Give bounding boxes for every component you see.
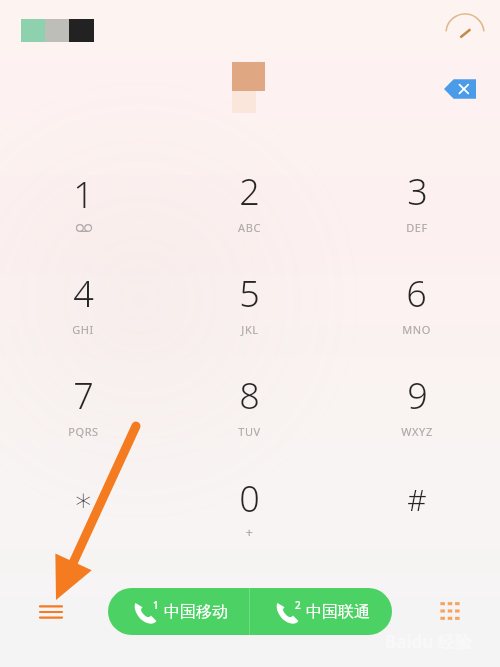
staticText: DEF [406,220,428,235]
staticText: + [245,523,254,541]
button[interactable]: 8 [166,354,333,456]
button[interactable]: 0 [166,456,333,558]
staticText: 1 [73,170,94,219]
staticText: GHI [72,322,94,337]
button[interactable]: 9 [333,354,500,456]
staticText: 2 [295,598,301,612]
staticText: JKL [241,322,259,337]
button[interactable]: Backspace [444,78,476,100]
staticText: 7 [73,371,94,420]
button[interactable]: 2 [166,150,333,252]
button[interactable]: Contacts [434,596,466,626]
button[interactable]: 1 [0,150,166,252]
staticText: 0 [239,474,260,523]
button[interactable]: ∗ [0,456,166,558]
staticText: 中国联通 [306,602,370,622]
staticText: 8 [239,371,260,420]
button[interactable]: Call log [36,598,66,626]
button[interactable]: 2 [250,588,392,635]
button[interactable]: # [333,456,500,558]
staticText: WXYZ [401,424,433,439]
staticText: # [407,479,427,520]
staticText: 中国移动 [164,602,228,622]
button[interactable]: 1 [108,588,249,635]
staticText: PQRS [68,424,99,439]
staticText: 1 [153,598,159,612]
button[interactable]: 6 [333,252,500,354]
staticText: ∗ [73,481,94,518]
button[interactable]: 5 [166,252,333,354]
staticText: MNO [402,322,431,337]
staticText: 9 [407,371,428,420]
other: Timer [446,14,484,52]
button[interactable]: 7 [0,354,166,456]
button[interactable]: 4 [0,252,166,354]
staticText: ABC [238,220,261,235]
staticText: 2 [239,167,260,216]
staticText: 5 [239,269,260,318]
staticText: TUV [238,424,261,439]
button[interactable]: 3 [333,150,500,252]
staticText: 4 [73,269,94,318]
staticText: 3 [407,167,428,216]
staticText: 6 [406,269,427,318]
